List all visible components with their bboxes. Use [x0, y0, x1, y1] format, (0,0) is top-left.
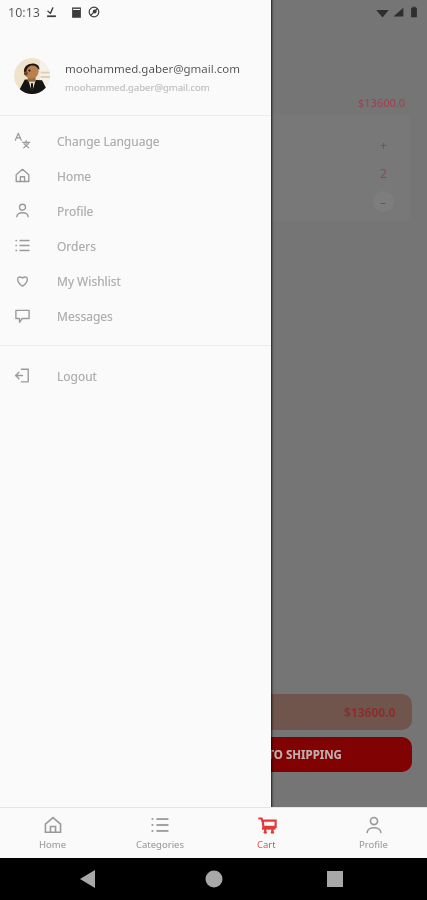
staticText: Home: [57, 168, 92, 184]
staticText: moohammed.gaber@gmail.com: [65, 81, 210, 94]
staticText: Home: [39, 838, 67, 851]
staticText: 10:13: [8, 4, 40, 21]
button[interactable]: Profile: [320, 808, 427, 858]
staticText: $13600.0: [344, 704, 396, 720]
button[interactable]: Logout: [0, 358, 271, 393]
button[interactable]: moohammed.gaber@gmail.com: [0, 24, 271, 115]
button[interactable]: Home: [0, 158, 271, 193]
button[interactable]: Categories: [106, 808, 213, 858]
staticText: My Wishlist: [57, 273, 121, 289]
button[interactable]: Profile: [0, 193, 271, 228]
button[interactable]: Change Language: [0, 123, 271, 158]
staticText: Orders: [57, 238, 96, 254]
button[interactable]: Home: [0, 808, 106, 858]
button[interactable]: $13600.0: [15, 694, 412, 730]
staticText: 2: [380, 165, 387, 181]
staticText: –: [380, 194, 387, 210]
staticText: Logout: [57, 368, 97, 384]
staticText: Profile: [57, 203, 94, 219]
staticText: Cart: [257, 838, 276, 851]
button[interactable]: Increase quantity: [373, 134, 394, 155]
button[interactable]: Increase quantity: [17, 114, 410, 221]
staticText: Change Language: [57, 133, 160, 149]
button[interactable]: Decrease quantity: [373, 191, 394, 212]
button[interactable]: Messages: [0, 298, 271, 333]
staticText: moohammed.gaber@gmail.com: [65, 61, 241, 77]
button[interactable]: Orders: [0, 228, 271, 263]
staticText: Categories: [136, 838, 184, 851]
button[interactable]: Cart: [213, 808, 320, 858]
button[interactable]: GO TO SHIPPING: [15, 737, 412, 772]
staticText: Profile: [359, 838, 388, 851]
staticText: GO TO SHIPPING: [247, 747, 342, 763]
staticText: +: [380, 137, 387, 153]
staticText: $13600.0: [358, 95, 405, 110]
button[interactable]: My Wishlist: [0, 263, 271, 298]
staticText: Messages: [57, 308, 113, 324]
